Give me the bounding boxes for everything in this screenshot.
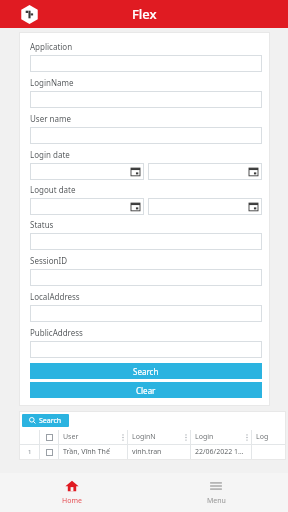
button[interactable]: Select [46, 449, 53, 456]
button[interactable]: Clear [30, 382, 262, 398]
staticText: 1 [28, 448, 32, 456]
staticText: Home [62, 496, 82, 506]
button[interactable] [30, 269, 262, 286]
button[interactable] [30, 55, 262, 72]
staticText: PublicAddress [30, 327, 83, 338]
staticText: Menu [207, 496, 226, 506]
staticText: 22/06/2022 1… [195, 447, 244, 457]
button[interactable]: Home [0, 473, 144, 512]
button[interactable] [30, 341, 262, 358]
staticText: Status [30, 219, 54, 230]
staticText: Search [133, 366, 159, 377]
button[interactable]: Pick date [30, 163, 144, 180]
button[interactable]: Log [252, 430, 286, 444]
staticText: Flex [132, 5, 157, 23]
staticText: Login date [195, 432, 220, 442]
button[interactable]: User name [59, 430, 127, 444]
staticText: Search [39, 416, 62, 426]
staticText: Log [256, 432, 269, 442]
staticText: Trần, Vĩnh Thế [63, 447, 110, 457]
other: Pick date [131, 167, 140, 176]
staticText: LoginName [30, 77, 74, 88]
staticText: LocalAddress [30, 291, 80, 302]
staticText: SessionID [30, 255, 67, 266]
button[interactable] [30, 305, 262, 322]
staticText: vinh.tran [132, 447, 162, 457]
button[interactable]: Menu [144, 473, 288, 512]
button[interactable] [30, 127, 262, 144]
button[interactable]: Search [22, 414, 69, 427]
staticText: Login date [30, 149, 70, 160]
other: Pick date [131, 202, 140, 211]
other: Pick date [249, 167, 258, 176]
staticText: LoginName [132, 432, 158, 442]
button[interactable]: Select [46, 434, 53, 441]
staticText: Logout date [30, 184, 76, 195]
button[interactable]: LoginName [128, 430, 190, 444]
button[interactable] [30, 233, 262, 250]
staticText: Clear [136, 385, 156, 396]
button[interactable]: Pick date [30, 198, 144, 215]
button[interactable]: Pick date [148, 198, 262, 215]
button[interactable]: Pick date [148, 163, 262, 180]
button[interactable] [30, 91, 262, 108]
button[interactable]: App logo [20, 5, 39, 24]
button[interactable]: Search [30, 363, 262, 379]
other: Pick date [249, 202, 258, 211]
button[interactable]: Login date [191, 430, 251, 444]
staticText: Application [30, 41, 73, 52]
staticText: User name [63, 432, 92, 442]
staticText: User name [30, 113, 71, 124]
